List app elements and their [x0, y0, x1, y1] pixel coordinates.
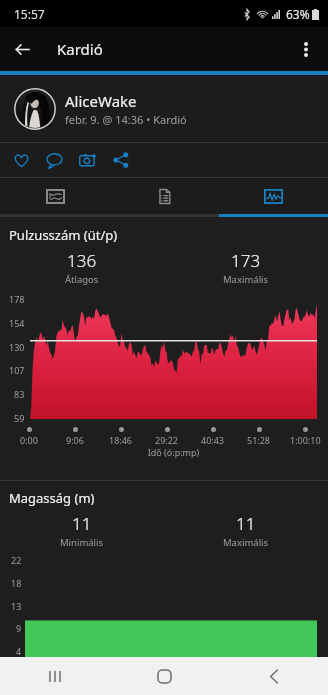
button[interactable]: Comment [38, 143, 71, 177]
staticText: 178 [9, 293, 25, 305]
staticText: 154 [9, 317, 25, 329]
button[interactable]: Home [110, 657, 219, 695]
staticText: febr. 9. @ 14:36 • Kardió [65, 112, 187, 127]
staticText: 1:00:10 [290, 434, 321, 446]
staticText: 59 [14, 412, 25, 424]
staticText: 11 [72, 512, 92, 535]
button[interactable]: Back [219, 657, 328, 695]
staticText: Kardió [57, 39, 103, 59]
staticText: 83 [14, 388, 25, 400]
staticText: 29:22 [155, 434, 179, 446]
staticText: Maximális [223, 273, 269, 286]
staticText: Magasság (m) [9, 489, 95, 507]
button[interactable]: Details [110, 178, 219, 214]
button[interactable]: Share [104, 143, 137, 177]
staticText: 136 [67, 249, 97, 272]
staticText: 40:43 [201, 434, 225, 446]
staticText: 18:46 [109, 434, 133, 446]
staticText: 13 [11, 600, 22, 612]
staticText: 22 [11, 554, 22, 566]
staticText: 11 [236, 512, 256, 535]
staticText: 18 [11, 577, 22, 589]
staticText: 4 [16, 645, 22, 657]
button[interactable]: Back [0, 27, 44, 71]
staticText: 130 [9, 341, 25, 353]
button[interactable]: Recent apps [0, 657, 110, 695]
staticText: Idő (ó:p:mp) [19, 446, 328, 458]
staticText: Maximális [223, 536, 269, 549]
staticText: 15:57 [14, 6, 45, 22]
staticText: 107 [9, 364, 25, 376]
button[interactable]: Map [0, 178, 110, 214]
staticText: AliceWake [65, 91, 137, 111]
staticText: 0:00 [20, 434, 38, 446]
staticText: 9:06 [66, 434, 84, 446]
button[interactable]: More options [284, 27, 328, 71]
button[interactable]: Like [5, 143, 38, 177]
button[interactable]: Add photo [71, 143, 104, 177]
button[interactable]: AliceWake [0, 75, 328, 142]
staticText: 63% [286, 6, 310, 22]
button[interactable]: Charts [219, 178, 328, 214]
staticText: Pulzusszám (üt/p) [9, 226, 118, 244]
staticText: 173 [231, 249, 261, 272]
staticText: Átlagos [65, 273, 99, 286]
staticText: 51:28 [247, 434, 271, 446]
staticText: 9 [16, 622, 22, 634]
staticText: Minimális [60, 536, 104, 549]
